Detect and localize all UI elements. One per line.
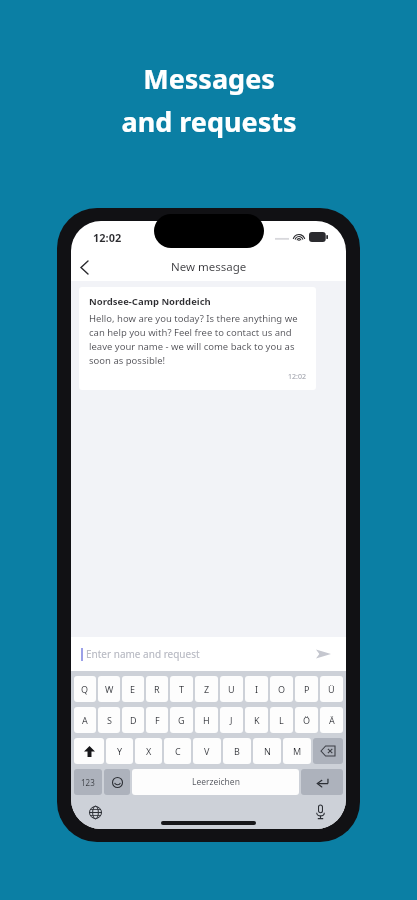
button[interactable]: Return <box>301 769 343 795</box>
staticText: 12:02 <box>288 372 306 382</box>
button[interactable]: G <box>170 707 193 733</box>
button[interactable]: Q <box>74 676 96 702</box>
button[interactable]: I <box>245 676 268 702</box>
staticText: F <box>155 714 160 726</box>
staticText: H <box>203 714 210 726</box>
staticText: Ö <box>303 714 311 726</box>
staticText: V <box>204 745 210 757</box>
staticText: P <box>304 683 310 695</box>
button[interactable]: N <box>253 738 281 764</box>
button[interactable]: W <box>98 676 120 702</box>
staticText: Enter name and request <box>86 647 310 661</box>
button[interactable]: V <box>193 738 221 764</box>
staticText: Ü <box>328 683 335 695</box>
button[interactable]: X <box>135 738 162 764</box>
staticText: L <box>279 714 284 726</box>
staticText: 12:02 <box>93 230 122 245</box>
button[interactable]: Shift <box>74 738 104 764</box>
button[interactable]: Backspace <box>313 738 343 764</box>
staticText: D <box>130 714 137 726</box>
staticText: J <box>230 714 233 726</box>
button[interactable]: C <box>164 738 191 764</box>
button[interactable]: Ä <box>320 707 343 733</box>
staticText: Q <box>81 683 89 695</box>
button[interactable]: Ö <box>295 707 318 733</box>
button[interactable]: J <box>220 707 243 733</box>
button[interactable]: R <box>146 676 168 702</box>
staticText: and requests <box>121 103 297 140</box>
staticText: A <box>82 714 88 726</box>
button[interactable]: D <box>122 707 144 733</box>
staticText: R <box>154 683 160 695</box>
staticText: Nordsee-Camp Norddeich <box>89 295 211 308</box>
button[interactable]: Dictate <box>310 802 330 822</box>
button[interactable]: L <box>270 707 293 733</box>
staticText: S <box>107 714 112 726</box>
staticText: C <box>175 745 181 757</box>
staticText: K <box>254 714 260 726</box>
button[interactable]: O <box>270 676 293 702</box>
staticText: X <box>146 745 152 757</box>
button[interactable]: B <box>223 738 251 764</box>
button[interactable]: K <box>245 707 268 733</box>
staticText: Y <box>117 745 123 757</box>
staticText: Z <box>204 683 210 695</box>
button[interactable]: Emoji <box>104 769 130 795</box>
button[interactable]: A <box>74 707 96 733</box>
button[interactable]: Y <box>106 738 133 764</box>
button[interactable]: T <box>170 676 193 702</box>
button[interactable]: Change keyboard <box>85 802 105 822</box>
button[interactable]: Z <box>195 676 218 702</box>
button[interactable]: U <box>220 676 243 702</box>
button[interactable]: Back <box>71 254 97 280</box>
staticText: New message <box>171 259 247 275</box>
button[interactable]: 123 <box>74 769 102 795</box>
staticText: W <box>105 683 114 695</box>
button[interactable]: F <box>146 707 168 733</box>
staticText: E <box>130 683 136 695</box>
staticText: T <box>179 683 185 695</box>
staticText: N <box>264 745 271 757</box>
staticText: Hello, how are you today? Is there anyth… <box>89 312 306 367</box>
staticText: Leerzeichen <box>192 776 240 788</box>
staticText: I <box>255 683 259 695</box>
staticText: G <box>178 714 185 726</box>
button[interactable]: Ü <box>320 676 343 702</box>
button[interactable]: S <box>98 707 120 733</box>
staticText: Ä <box>329 714 335 726</box>
staticText: U <box>228 683 235 695</box>
button[interactable]: P <box>295 676 318 702</box>
staticText: 123 <box>81 777 95 788</box>
button[interactable]: Leerzeichen <box>132 769 299 795</box>
button[interactable]: M <box>283 738 311 764</box>
staticText: Messages <box>143 60 275 97</box>
staticText: O <box>278 683 286 695</box>
button[interactable]: H <box>195 707 218 733</box>
staticText: B <box>234 745 240 757</box>
button[interactable]: E <box>122 676 144 702</box>
staticText: M <box>293 745 302 757</box>
button[interactable]: Send <box>310 641 336 667</box>
